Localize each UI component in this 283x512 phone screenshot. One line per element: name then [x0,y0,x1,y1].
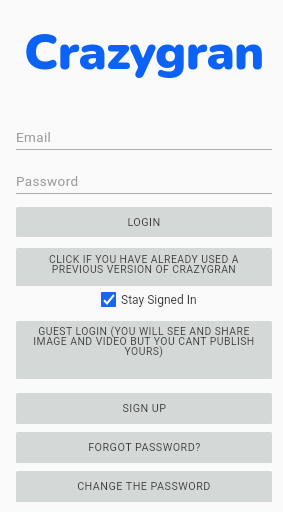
staticText: FORGOT PASSWORD? [88,441,201,454]
staticText: Crazygran [24,18,264,86]
button[interactable]: SIGN UP [16,393,272,424]
staticText: Password [16,173,79,189]
button[interactable]: Stay Signed In [16,292,272,307]
button[interactable]: FORGOT PASSWORD? [16,432,272,463]
button[interactable]: CLICK IF YOU HAVE ALREADY USED A PREVIOU… [16,248,272,286]
staticText: GUEST LOGIN (YOU WILL SEE AND SHARE IMAG… [30,325,258,357]
staticText: Email [16,129,52,145]
button[interactable]: LOGIN [16,207,272,237]
staticText: LOGIN [127,216,161,229]
button[interactable]: CHANGE THE PASSWORD [16,471,272,502]
staticText: Stay Signed In [121,293,197,307]
staticText: CLICK IF YOU HAVE ALREADY USED A PREVIOU… [49,253,239,275]
staticText: CHANGE THE PASSWORD [77,480,211,493]
button[interactable]: GUEST LOGIN (YOU WILL SEE AND SHARE IMAG… [16,321,272,379]
staticText: SIGN UP [122,402,167,415]
